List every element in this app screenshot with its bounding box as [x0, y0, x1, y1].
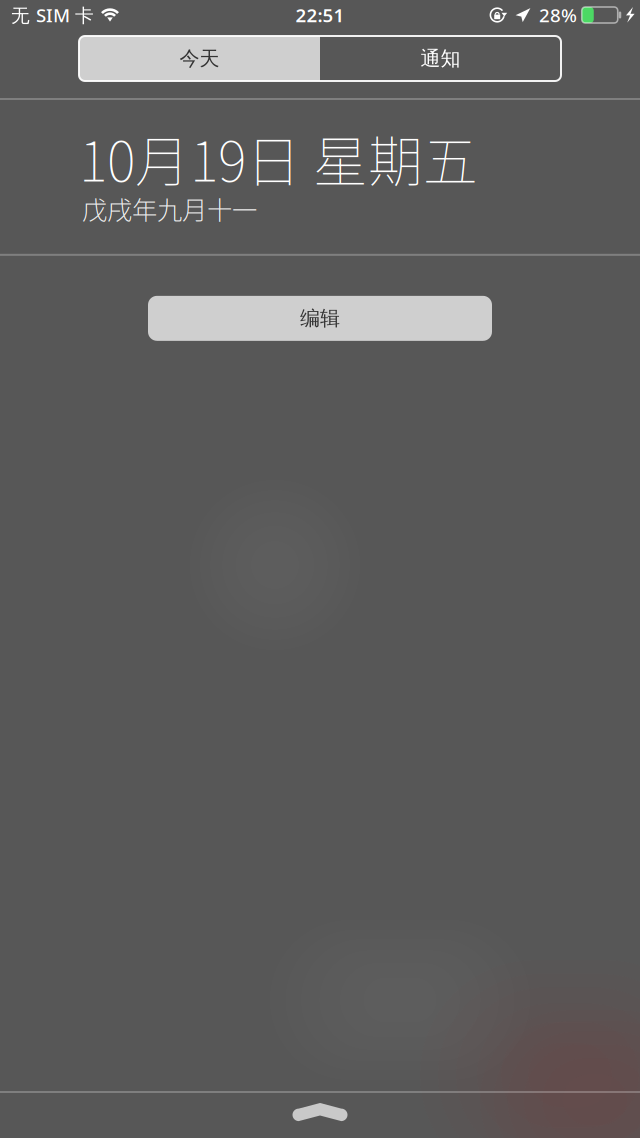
- button[interactable]: 通知: [320, 36, 561, 81]
- staticText: 10月19日 星期五: [79, 118, 478, 197]
- staticText: 今天: [179, 46, 219, 71]
- button[interactable]: 今天: [79, 36, 320, 81]
- staticText: 28%: [539, 3, 577, 27]
- staticText: 通知: [420, 46, 460, 71]
- staticText: 无 SIM 卡: [11, 3, 94, 27]
- staticText: 编辑: [300, 306, 340, 331]
- button[interactable]: 编辑: [148, 296, 492, 341]
- staticText: 22:51: [295, 3, 344, 27]
- staticText: 戊戌年九月十一: [82, 190, 257, 227]
